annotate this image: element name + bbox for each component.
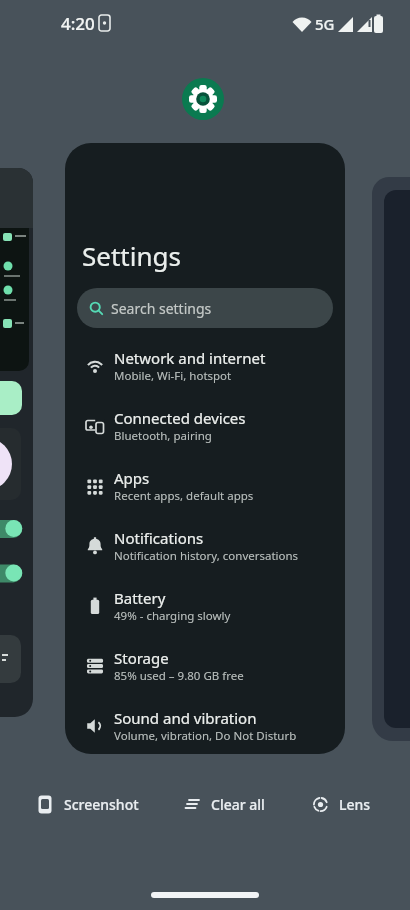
staticText: Apps [114,468,150,488]
staticText: Sound and vibration [114,708,257,728]
staticText: Screenshot [64,795,139,814]
button[interactable]: Battery [65,576,345,636]
staticText: Battery [114,588,166,608]
button[interactable]: Lens [313,792,371,816]
button[interactable] [0,168,33,717]
staticText: 49% - charging slowly [114,608,231,624]
staticText: Notification history, conversations [114,548,299,564]
button[interactable]: Network and internet [65,336,345,396]
staticText: Clear all [211,795,265,814]
button[interactable]: Clear all [185,792,265,816]
staticText: Recent apps, default apps [114,488,254,504]
button[interactable]: Screenshot [38,792,139,816]
staticText: Bluetooth, pairing [114,428,212,444]
staticText: Network and internet [114,348,266,368]
button[interactable]: Search settings [77,288,333,328]
staticText: Connected devices [114,408,246,428]
staticText: Search settings [111,299,212,318]
staticText: Notifications [114,528,204,548]
staticText: 5G [315,14,335,34]
button[interactable]: Settings [65,143,345,754]
button[interactable]: Connected devices [65,396,345,456]
button[interactable] [372,177,410,741]
button[interactable]: Notifications [65,516,345,576]
staticText: 4:20 [61,12,95,35]
staticText: Mobile, Wi-Fi, hotspot [114,368,232,384]
button[interactable] [182,78,224,120]
staticText: Lens [339,795,371,814]
staticText: Storage [114,648,169,668]
button[interactable]: Storage [65,636,345,696]
button[interactable]: Sound and vibration [65,696,345,754]
button[interactable]: Apps [65,456,345,516]
staticText: 85% used – 9.80 GB free [114,668,244,684]
staticText: Volume, vibration, Do Not Disturb [114,728,297,744]
staticText: Settings [82,238,181,273]
